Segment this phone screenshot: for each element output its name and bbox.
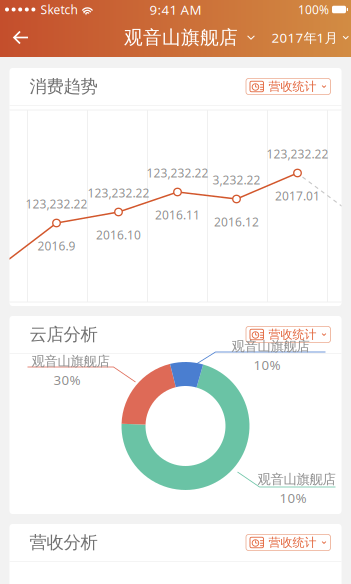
staticText: 消费趋势 [29,76,97,97]
staticText: 123,232.22 [266,146,328,162]
button[interactable]: Back [0,18,42,56]
button[interactable]: 2017年1月 [271,18,351,56]
staticText: 9:41 AM [149,1,201,18]
staticText: 云店分析 [29,324,97,345]
staticText: 30% [53,371,80,389]
staticText: 2016.11 [155,207,200,223]
button[interactable]: 营收统计 [246,534,330,550]
staticText: 2017年1月 [271,29,337,46]
staticText: 2016.10 [96,227,141,243]
staticText: 123,232.22 [146,165,208,181]
staticText: 10% [279,489,306,507]
staticText: 观音山旗舰店 [124,26,238,49]
staticText: 2017.01 [275,188,320,204]
staticText: 营收统计 [268,79,316,94]
staticText: 观音山旗舰店 [231,338,309,354]
staticText: Sketch [40,1,77,17]
staticText: 观音山旗舰店 [31,353,109,369]
button[interactable]: 观音山旗舰店 [124,18,255,56]
staticText: 营收统计 [268,327,316,342]
button[interactable]: 营收统计 [246,326,330,342]
staticText: 3,232.22 [212,172,260,188]
staticText: 营收统计 [268,535,316,550]
staticText: 100% [298,1,329,17]
staticText: 2016.9 [37,238,75,254]
staticText: 2016.12 [214,214,259,230]
staticText: 营收分析 [29,532,97,553]
staticText: 10% [253,356,280,374]
staticText: 观音山旗舰店 [257,471,335,487]
staticText: 123,232.22 [25,196,87,212]
staticText: 123,232.22 [87,185,149,201]
button[interactable]: 营收统计 [246,78,330,94]
